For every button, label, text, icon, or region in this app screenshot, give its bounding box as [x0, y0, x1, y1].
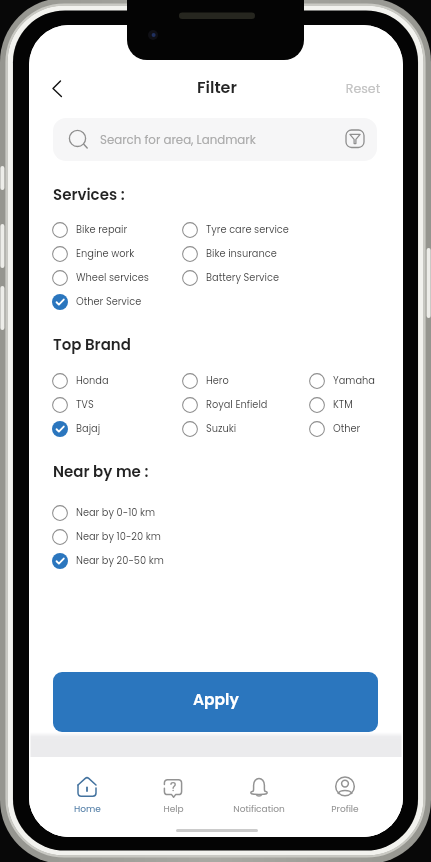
button[interactable]: TVS [52, 393, 94, 417]
button[interactable]: Profile [302, 757, 388, 819]
button[interactable]: Bike insurance [182, 242, 277, 266]
staticText: Top Brand [53, 334, 131, 355]
staticText: Other Service [76, 295, 142, 309]
staticText: Help [163, 803, 184, 816]
staticText: Near by me : [53, 461, 149, 482]
button[interactable]: Apply [53, 672, 378, 732]
button[interactable]: Search for area, Landmark [53, 118, 377, 161]
button[interactable]: Bajaj [52, 417, 101, 441]
button[interactable]: Other [309, 417, 361, 441]
staticText: Wheel services [76, 271, 149, 285]
button[interactable]: Near by 20-50 km [52, 549, 164, 573]
button[interactable]: Home [44, 757, 130, 819]
button[interactable]: Bike repair [52, 218, 128, 242]
button[interactable]: Help [130, 757, 216, 819]
button[interactable]: KTM [309, 393, 353, 417]
staticText: TVS [76, 398, 94, 412]
staticText: Home [74, 803, 101, 816]
staticText: Hero [206, 374, 229, 388]
staticText: KTM [333, 398, 353, 412]
staticText: Battery Service [206, 271, 280, 285]
staticText: Near by 10-20 km [76, 530, 161, 544]
staticText: Honda [76, 374, 109, 388]
staticText: Bajaj [76, 422, 101, 436]
button[interactable]: Wheel services [52, 266, 149, 290]
staticText: Filter [177, 76, 257, 98]
staticText: Yamaha [333, 374, 375, 388]
staticText: Notification [233, 803, 285, 816]
button[interactable]: Near by 0-10 km [52, 501, 156, 525]
staticText: Services : [53, 184, 125, 205]
staticText: Profile [331, 803, 359, 816]
button[interactable]: Honda [52, 369, 109, 393]
staticText: Bike insurance [206, 247, 277, 261]
staticText: Near by 0-10 km [76, 506, 156, 520]
staticText: Tyre care service [206, 223, 289, 237]
button[interactable]: Back [43, 75, 71, 103]
button[interactable]: Royal Enfield [182, 393, 268, 417]
staticText: Engine work [76, 247, 135, 261]
button[interactable]: Battery Service [182, 266, 280, 290]
button[interactable]: Suzuki [182, 417, 237, 441]
staticText: Royal Enfield [206, 398, 268, 412]
staticText: Apply [193, 689, 239, 711]
staticText: Suzuki [206, 422, 237, 436]
button[interactable]: Yamaha [309, 369, 375, 393]
button[interactable]: Hero [182, 369, 229, 393]
button[interactable]: Near by 10-20 km [52, 525, 161, 549]
button[interactable]: Tyre care service [182, 218, 289, 242]
staticText: Search for area, Landmark [100, 132, 256, 149]
staticText: Near by 20-50 km [76, 554, 164, 568]
button[interactable]: Reset [335, 80, 391, 98]
button[interactable]: Engine work [52, 242, 135, 266]
button[interactable]: Other Service [52, 290, 142, 314]
staticText: Other [333, 422, 361, 436]
staticText: Bike repair [76, 223, 128, 237]
button[interactable]: Notification [216, 757, 302, 819]
